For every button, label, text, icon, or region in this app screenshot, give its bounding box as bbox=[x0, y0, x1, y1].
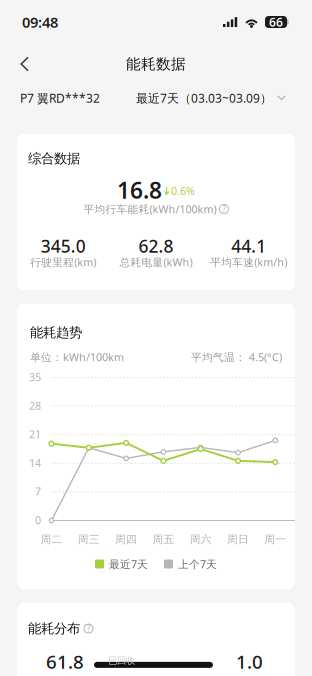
staticText: 已回收 bbox=[108, 655, 135, 666]
staticText: 周日 bbox=[227, 533, 249, 546]
staticText: P7 翼RD***32 bbox=[20, 90, 100, 106]
staticText: 行驶里程(km) bbox=[30, 255, 96, 269]
button[interactable]: P7 翼RD***32 bbox=[20, 85, 100, 111]
staticText: 能耗数据 bbox=[126, 55, 186, 73]
button[interactable]: 最近7天（03.03~03.09） bbox=[136, 85, 286, 111]
staticText: 最近7天 bbox=[109, 557, 148, 571]
staticText: 44.1 bbox=[231, 234, 266, 257]
staticText: 7 bbox=[35, 484, 41, 498]
button[interactable]: Back bbox=[0, 46, 43, 81]
staticText: 14 bbox=[29, 456, 41, 470]
staticText: 平均车速(km/h) bbox=[210, 255, 287, 269]
staticText: 平均行车能耗(kWh/100km) bbox=[83, 202, 216, 216]
staticText: 16.8 bbox=[117, 175, 162, 205]
staticText: 平均气温： 4.5(°C) bbox=[191, 350, 282, 364]
staticText: 上个7天 bbox=[178, 557, 217, 571]
staticText: 0 bbox=[35, 513, 41, 527]
staticText: 能耗趋势 bbox=[30, 324, 82, 341]
staticText: 周三 bbox=[78, 533, 100, 546]
staticText: 345.0 bbox=[41, 234, 86, 257]
staticText: 35 bbox=[29, 370, 41, 384]
staticText: 周二 bbox=[40, 533, 62, 546]
staticText: 综合数据 bbox=[28, 150, 80, 167]
staticText: 周一 bbox=[264, 533, 286, 546]
staticText: ? bbox=[222, 204, 225, 214]
staticText: 21 bbox=[29, 427, 41, 441]
staticText: 0.6% bbox=[171, 184, 195, 198]
staticText: 66 bbox=[269, 14, 283, 30]
staticText: 61.8 bbox=[46, 649, 84, 674]
staticText: 1.0 bbox=[236, 649, 263, 674]
staticText: 周四 bbox=[115, 533, 137, 546]
staticText: 28 bbox=[29, 398, 41, 413]
staticText: 最近7天（03.03~03.09） bbox=[136, 90, 272, 106]
staticText: 62.8 bbox=[138, 234, 173, 257]
staticText: 09:48 bbox=[22, 12, 58, 32]
staticText: 周六 bbox=[190, 533, 212, 546]
staticText: 周五 bbox=[152, 533, 174, 546]
staticText: ? bbox=[87, 623, 90, 634]
staticText: 能耗分布 bbox=[28, 620, 80, 637]
staticText: 总耗电量(kWh) bbox=[119, 255, 192, 269]
staticText: 单位：kWh/100km bbox=[30, 350, 124, 364]
